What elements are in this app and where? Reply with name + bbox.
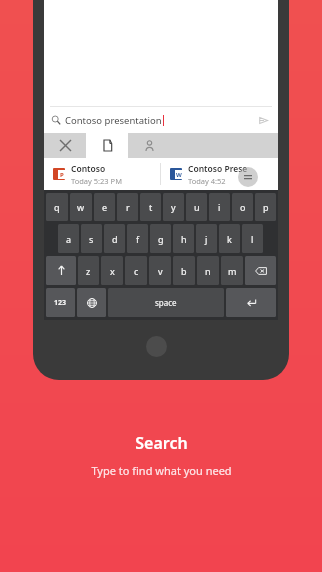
button[interactable]: Contoso presentation	[44, 107, 278, 133]
staticText: y	[171, 201, 176, 213]
staticText: Contoso Prese	[188, 163, 248, 175]
button[interactable]: n	[197, 256, 219, 285]
button[interactable]: w	[70, 193, 92, 221]
button[interactable]: Enter	[226, 288, 276, 317]
staticText: r	[126, 201, 130, 213]
button[interactable]: g	[150, 224, 171, 253]
button[interactable]: m	[221, 256, 243, 285]
button[interactable]: Backspace	[245, 256, 276, 285]
button[interactable]: e	[94, 193, 115, 221]
staticText: g	[158, 233, 164, 245]
button[interactable]: i	[209, 193, 230, 221]
button[interactable]: z	[78, 256, 99, 285]
staticText: Type to find what you need	[91, 463, 232, 478]
staticText: j	[205, 233, 208, 245]
staticText: z	[86, 265, 91, 277]
button[interactable]: p	[255, 193, 276, 221]
button[interactable]: j	[196, 224, 217, 253]
button[interactable]: y	[163, 193, 184, 221]
button[interactable]: W	[161, 158, 278, 190]
staticText: c	[134, 265, 139, 277]
staticText: a	[66, 233, 72, 245]
button[interactable]: l	[242, 224, 263, 253]
staticText: l	[251, 233, 254, 245]
button[interactable]: o	[232, 193, 253, 221]
button[interactable]: space	[108, 288, 224, 317]
button[interactable]: P	[44, 158, 160, 190]
button[interactable]: Shift	[46, 256, 76, 285]
staticText: b	[181, 265, 187, 277]
button[interactable]: d	[104, 224, 125, 253]
staticText: n	[205, 265, 211, 277]
staticText: u	[194, 201, 200, 213]
button[interactable]: k	[219, 224, 240, 253]
staticText: W	[176, 171, 182, 179]
button[interactable]: Handle	[238, 167, 258, 187]
button[interactable]: Send	[255, 112, 271, 128]
staticText: p	[263, 201, 269, 213]
staticText: e	[102, 201, 108, 213]
staticText: Contoso presentation	[65, 114, 162, 127]
staticText: Contoso Presentation	[71, 163, 160, 175]
staticText: s	[89, 233, 94, 245]
staticText: v	[158, 265, 163, 277]
staticText: P	[60, 171, 64, 179]
staticText: 123	[54, 298, 67, 308]
button[interactable]: a	[58, 224, 79, 253]
button[interactable]: s	[81, 224, 102, 253]
button[interactable]: People	[128, 133, 170, 158]
button[interactable]: f	[127, 224, 148, 253]
staticText: f	[136, 233, 140, 245]
staticText: d	[112, 233, 118, 245]
staticText: m	[228, 265, 237, 277]
staticText: q	[54, 201, 60, 213]
button[interactable]: r	[117, 193, 138, 221]
staticText: h	[181, 233, 187, 245]
staticText: i	[218, 201, 221, 213]
button[interactable]: x	[101, 256, 123, 285]
button[interactable]: c	[125, 256, 147, 285]
button[interactable]: q	[46, 193, 68, 221]
staticText: k	[227, 233, 232, 245]
staticText: t	[149, 201, 153, 213]
button[interactable]: u	[186, 193, 207, 221]
staticText: Today 4:52	[188, 176, 226, 186]
button[interactable]: t	[140, 193, 161, 221]
staticText: Today 5:23 PM	[71, 176, 122, 186]
button[interactable]: Close	[44, 133, 86, 158]
staticText: w	[77, 201, 85, 213]
button[interactable]: b	[173, 256, 195, 285]
button[interactable]: Home	[146, 336, 167, 357]
staticText: space	[155, 297, 177, 308]
button[interactable]: h	[173, 224, 194, 253]
staticText: x	[110, 265, 115, 277]
button[interactable]: Change language	[77, 288, 106, 317]
button[interactable]: Documents	[86, 133, 128, 158]
button[interactable]: v	[149, 256, 171, 285]
staticText: Search	[135, 432, 188, 454]
button[interactable]: 123	[46, 288, 75, 317]
staticText: o	[240, 201, 246, 213]
